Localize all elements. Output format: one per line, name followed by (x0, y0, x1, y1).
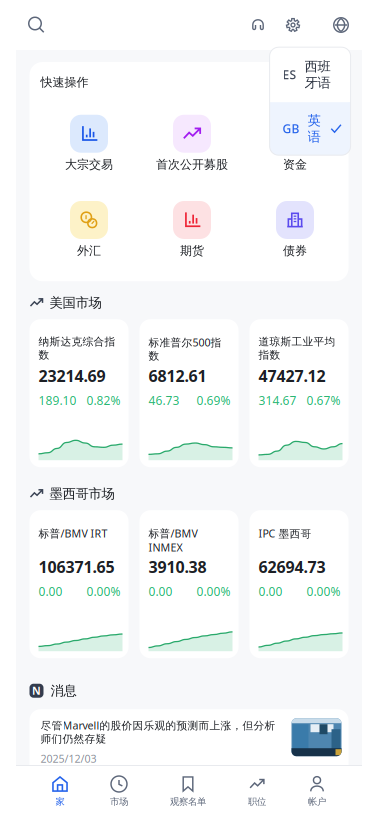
button[interactable]: Support (246, 13, 270, 37)
button[interactable]: 职位 (242, 776, 272, 807)
staticText: 106371.65 (38, 556, 114, 577)
staticText: 英语 (308, 112, 321, 145)
staticText: 0.00% (196, 583, 230, 599)
staticText: 0.00 (148, 583, 172, 599)
staticText: 46.73 (148, 392, 179, 408)
button[interactable]: IPC 墨西哥 (249, 510, 348, 658)
staticText: 职位 (248, 796, 266, 807)
staticText: IPC 墨西哥 (258, 526, 311, 540)
staticText: 帐户 (308, 796, 326, 807)
staticText: ES (283, 67, 297, 83)
button[interactable]: 标准普尔500指数 (139, 319, 238, 467)
staticText: 6812.61 (148, 365, 206, 386)
staticText: 0.00% (86, 583, 120, 599)
staticText: 首次公开募股 (156, 157, 228, 172)
staticText: 期货 (180, 243, 204, 258)
staticText: 债券 (283, 243, 307, 258)
staticText: 47427.12 (258, 365, 325, 386)
staticText: 0.00% (306, 583, 340, 599)
button[interactable]: 市场 (104, 776, 134, 807)
button[interactable]: Settings (281, 13, 305, 37)
button[interactable]: 家 (46, 776, 74, 807)
staticText: 0.00 (258, 583, 282, 599)
staticText: 314.67 (258, 392, 296, 408)
staticText: 消息 (50, 682, 76, 699)
button[interactable]: 期货 (140, 201, 243, 258)
staticText: 墨西哥市场 (49, 485, 114, 502)
button[interactable]: 资金 (243, 115, 346, 172)
staticText: 189.10 (38, 392, 76, 408)
staticText: 美国市场 (49, 294, 101, 311)
button[interactable]: 标普/BMV INMEX (139, 510, 238, 658)
staticText: 快速操作 (40, 75, 88, 90)
staticText: 标普/BMV IRT (38, 526, 107, 540)
staticText: 尽管Marvell的股价因乐观的预测而上涨，但分析师们仍然存疑 (40, 718, 275, 745)
staticText: 家 (55, 796, 64, 807)
staticText: 3910.38 (148, 556, 206, 577)
staticText: 西班牙语 (305, 58, 331, 91)
button[interactable]: ES (270, 47, 351, 102)
button[interactable]: 纳斯达克综合指数 (29, 319, 128, 467)
staticText: 道琼斯工业平均指数 (258, 335, 335, 361)
staticText: 0.00 (38, 583, 62, 599)
button[interactable]: 帐户 (302, 776, 332, 807)
staticText: 外汇 (77, 243, 101, 258)
button[interactable]: 道琼斯工业平均指数 (249, 319, 348, 467)
staticText: 23214.69 (38, 365, 105, 386)
button[interactable]: 观察名单 (164, 776, 212, 807)
staticText: GB (283, 121, 300, 137)
staticText: 0.82% (86, 392, 120, 408)
staticText: 0.69% (196, 392, 230, 408)
staticText: 标准普尔500指数 (148, 335, 221, 362)
staticText: 纳斯达克综合指数 (38, 335, 115, 361)
button[interactable]: GB (270, 102, 351, 155)
staticText: 0.67% (306, 392, 340, 408)
button[interactable]: 债券 (243, 201, 346, 258)
button[interactable]: Search (22, 11, 50, 39)
staticText: N (32, 684, 41, 698)
button[interactable]: 标普/BMV IRT (29, 510, 128, 658)
button[interactable]: 尽管Marvell的股价因乐观的预测而上涨，但分析师们仍然存疑 (29, 709, 348, 782)
staticText: 2025/12/03 (40, 751, 96, 766)
staticText: 观察名单 (170, 796, 206, 807)
staticText: 62694.73 (258, 556, 325, 577)
staticText: 标普/BMV INMEX (148, 526, 197, 554)
staticText: 市场 (110, 796, 128, 807)
button[interactable]: Language (329, 13, 353, 37)
button[interactable]: 首次公开募股 (140, 115, 243, 172)
staticText: 资金 (283, 157, 307, 172)
button[interactable]: 外汇 (37, 201, 140, 258)
staticText: 大宗交易 (65, 157, 113, 172)
button[interactable]: 大宗交易 (37, 115, 140, 172)
